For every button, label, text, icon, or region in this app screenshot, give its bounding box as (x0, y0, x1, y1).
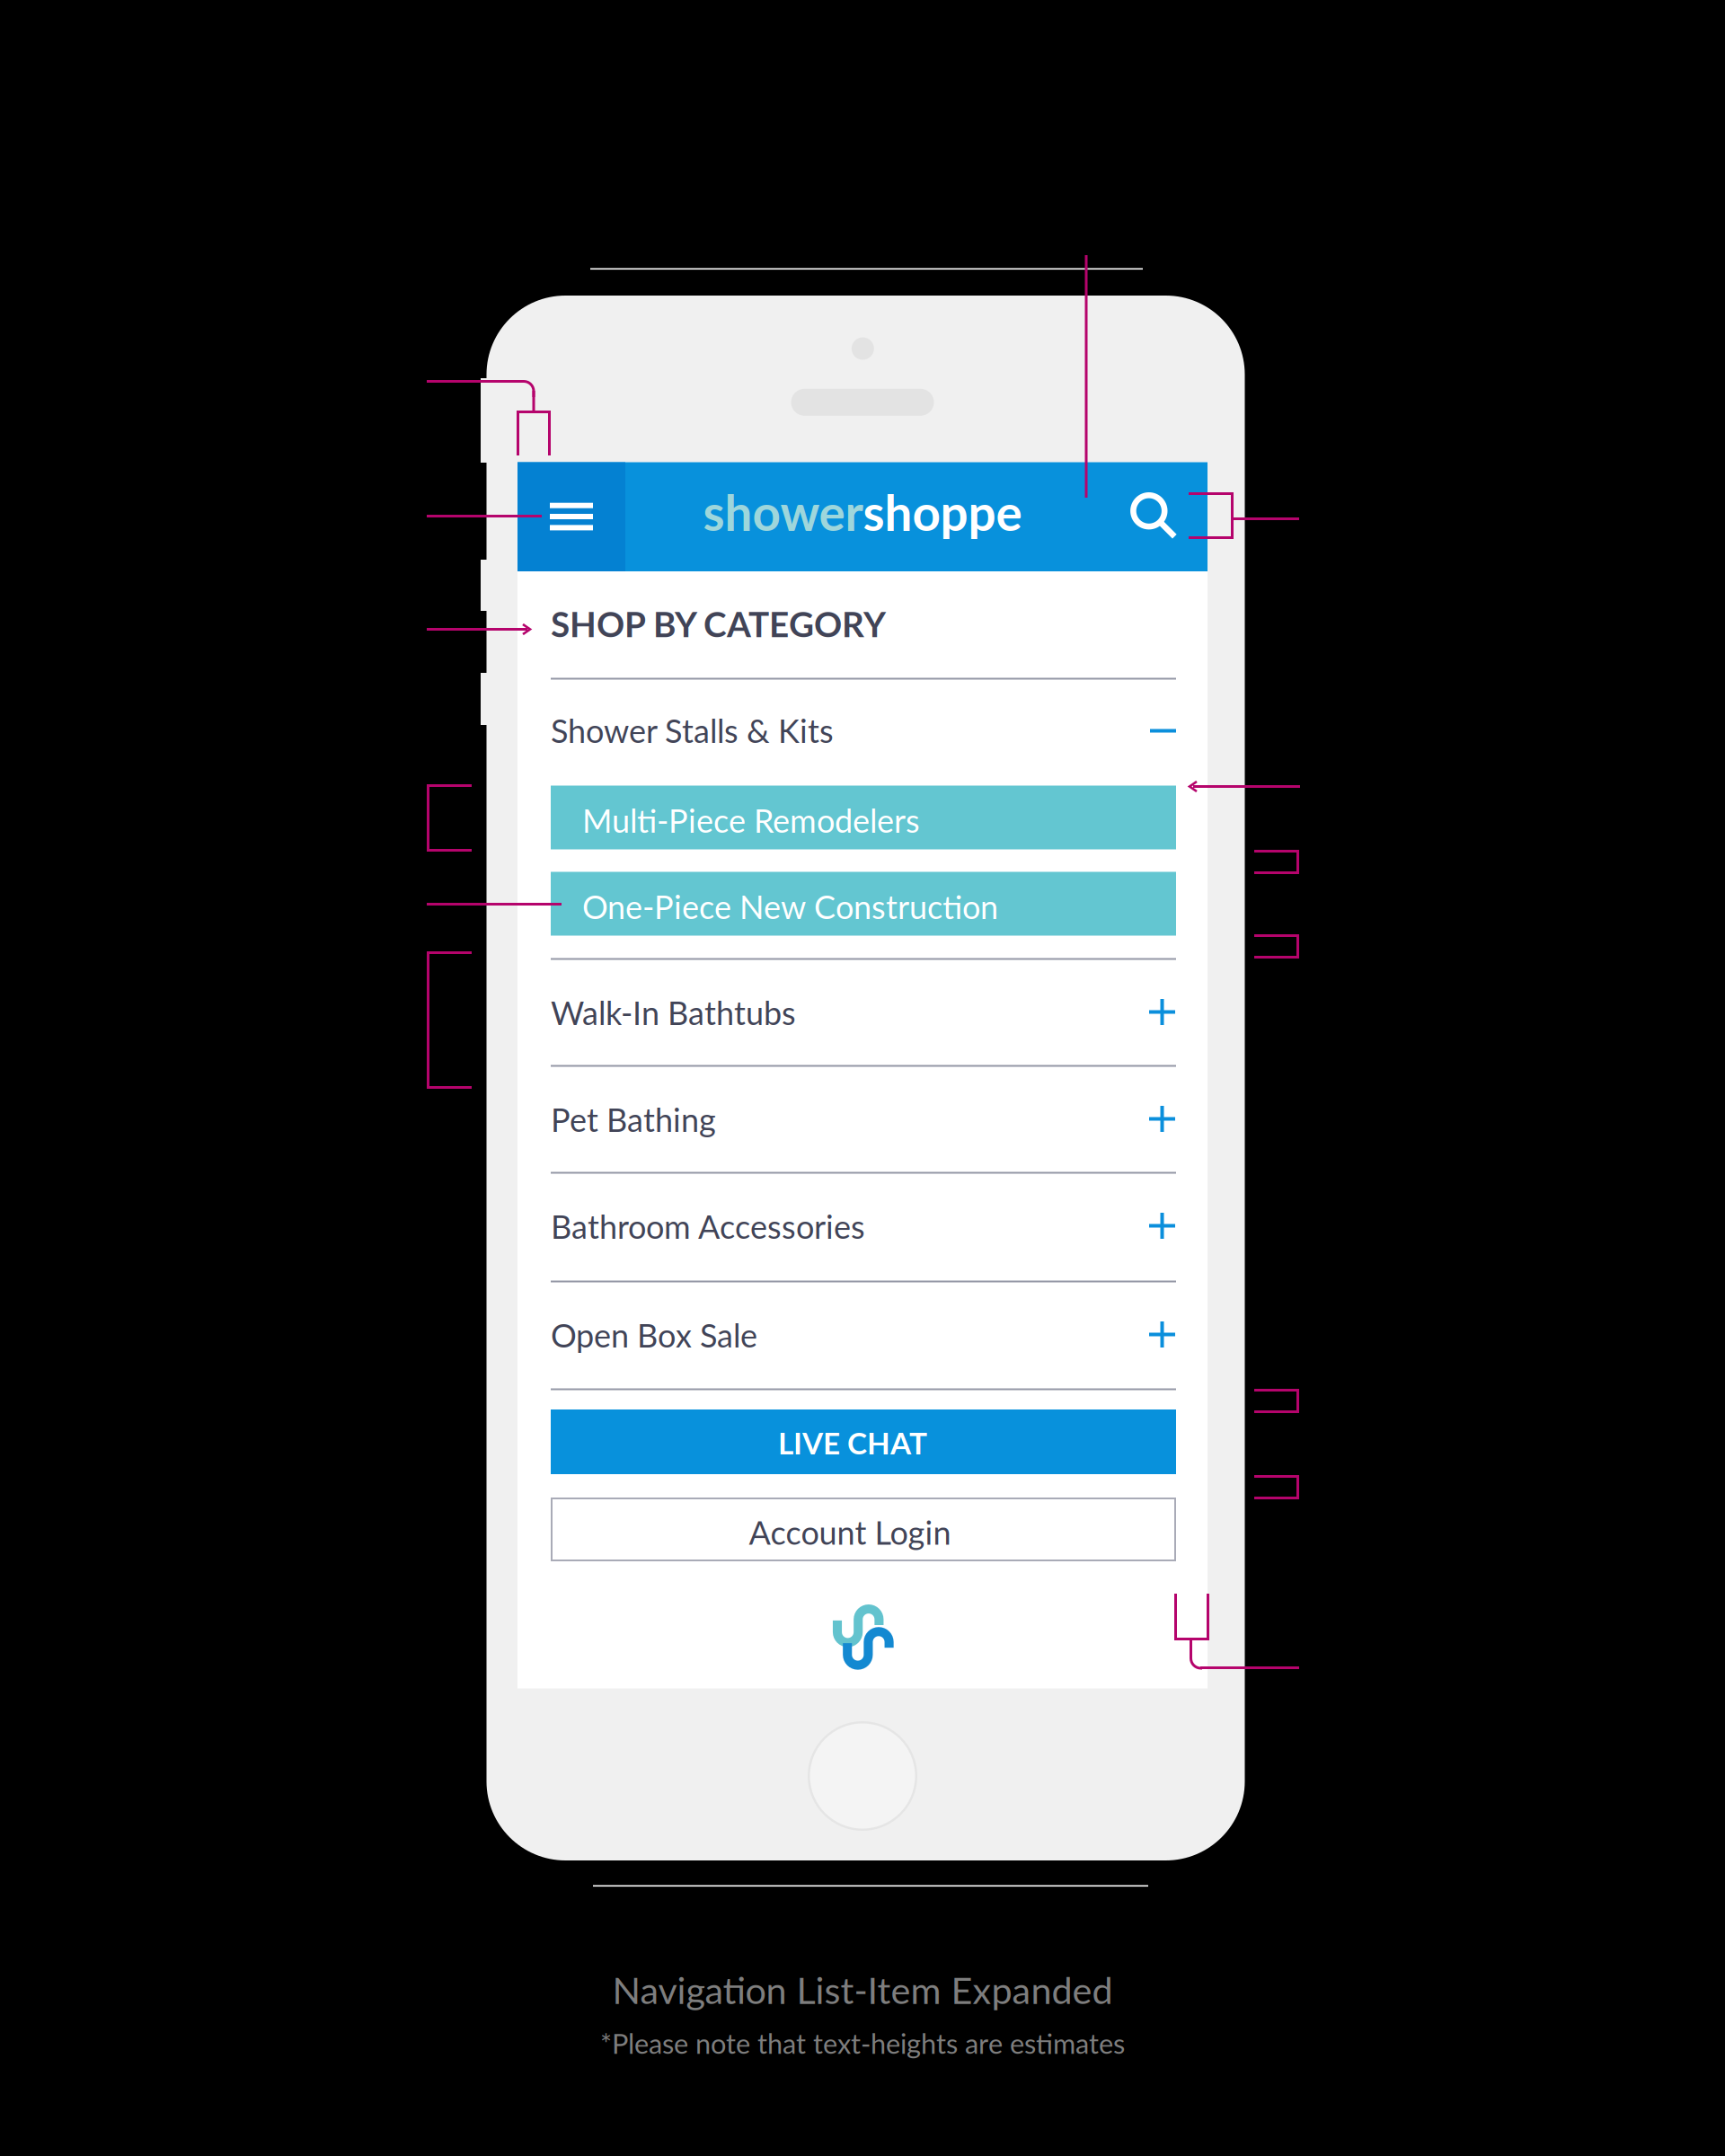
staticText: Shower Stalls & Kits (551, 711, 834, 750)
button[interactable]: Bathroom Accessories (551, 1174, 1176, 1279)
button[interactable]: Walk-In Bathtubs (551, 960, 1176, 1065)
staticText: Bathroom Accessories (551, 1207, 865, 1246)
staticText: Account Login (749, 1513, 951, 1552)
staticText: Multi-Piece Remodelers (582, 801, 920, 840)
button[interactable]: LIVE CHAT (551, 1409, 1176, 1474)
staticText: *Please note that text-heights are estim… (600, 2027, 1125, 2060)
staticText: Navigation List-Item Expanded (612, 1967, 1113, 2012)
staticText: Pet Bathing (551, 1100, 716, 1139)
button[interactable]: Shower Stalls & Kits (551, 680, 1176, 786)
staticText: SHOP BY CATEGORY (551, 603, 886, 644)
staticText: LIVE CHAT (778, 1425, 927, 1461)
staticText: One-Piece New Construction (582, 887, 998, 926)
button[interactable]: Pet Bathing (551, 1067, 1176, 1172)
button[interactable]: Multi-Piece Remodelers (551, 786, 1176, 849)
staticText: Open Box Sale (551, 1316, 757, 1354)
button[interactable]: One-Piece New Construction (551, 872, 1176, 936)
staticText: shoppe (863, 482, 1022, 541)
button[interactable]: Search (1100, 462, 1207, 571)
button[interactable]: Open Box Sale (551, 1282, 1176, 1387)
staticText: shower (703, 482, 863, 541)
staticText: Walk-In Bathtubs (551, 993, 796, 1032)
button[interactable]: Account Login (551, 1498, 1176, 1561)
button[interactable]: Open navigation menu (517, 462, 625, 571)
